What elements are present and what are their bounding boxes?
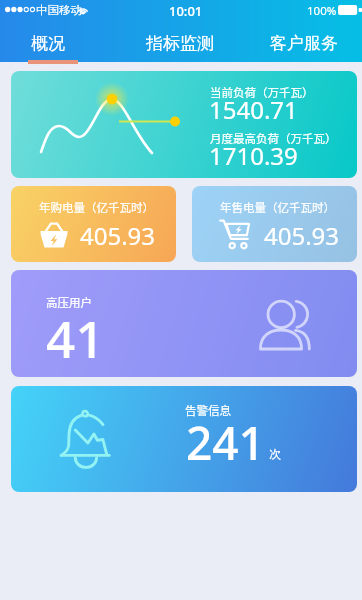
button[interactable]: 年售电量（亿千瓦时） [192, 186, 357, 262]
other: 告警信息 [58, 408, 114, 470]
staticText: 405.93 [80, 219, 156, 252]
staticText: 概况 [31, 33, 65, 54]
button[interactable]: 告警信息 [11, 386, 357, 492]
staticText: 405.93 [264, 219, 340, 252]
other: 高压用户 [258, 298, 314, 354]
button[interactable]: 年购电量（亿千瓦时） [11, 186, 176, 262]
button[interactable]: 客户服务 [249, 22, 359, 62]
staticText: 241 [186, 411, 265, 474]
staticText: 100% [307, 3, 337, 19]
staticText: 41 [46, 303, 105, 372]
staticText: 次 [269, 446, 281, 461]
staticText: 1540.71 [209, 93, 298, 126]
button[interactable]: 当前负荷（万千瓦） [11, 71, 357, 178]
staticText: 年购电量（亿千瓦时） [39, 199, 154, 216]
staticText: 月度最高负荷（万千瓦） [210, 130, 337, 147]
button[interactable]: 概况 [0, 22, 103, 62]
staticText: 中国移动 [36, 3, 82, 17]
button[interactable]: 高压用户 [11, 270, 357, 377]
staticText: 年售电量（亿千瓦时） [220, 199, 335, 216]
staticText: 10:01 [169, 2, 203, 20]
staticText: 当前负荷（万千瓦） [210, 84, 314, 101]
staticText: 指标监测 [146, 33, 214, 54]
staticText: 客户服务 [270, 33, 338, 54]
staticText: 高压用户 [46, 294, 92, 311]
staticText: 1710.39 [209, 139, 298, 172]
staticText: 告警信息 [185, 402, 231, 419]
button[interactable]: 指标监测 [125, 22, 235, 62]
